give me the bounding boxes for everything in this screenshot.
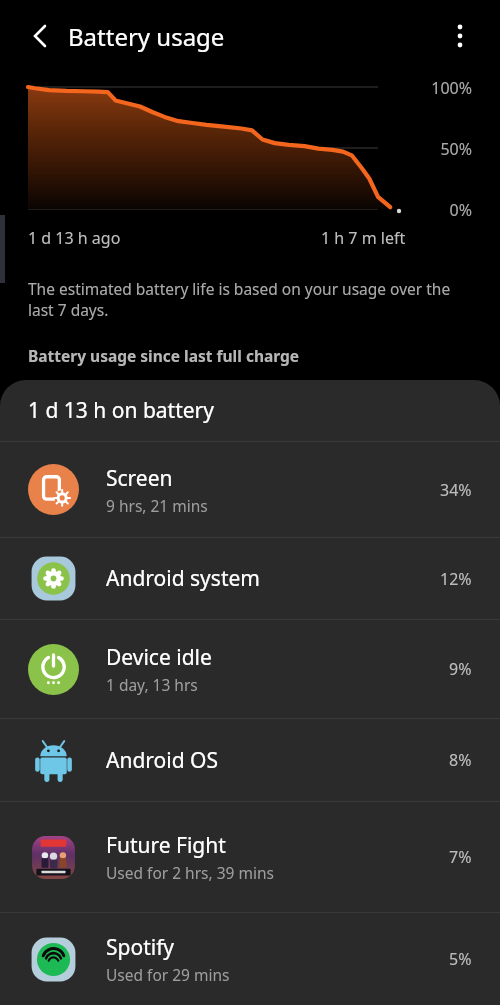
button[interactable]: Device idle [0, 619, 500, 718]
button[interactable]: Screen [0, 441, 500, 537]
staticText: Future Fight [106, 831, 226, 860]
staticText: Battery usage [68, 20, 225, 53]
staticText: 9 hrs, 21 mins [106, 495, 208, 516]
staticText: 34% [440, 479, 472, 501]
staticText: Android system [106, 564, 260, 593]
button[interactable]: Spotify [0, 912, 500, 1005]
staticText: Used for 29 mins [106, 964, 230, 985]
staticText: 9% [449, 658, 472, 680]
staticText: Battery usage since last full charge [28, 345, 300, 366]
staticText: Used for 2 hrs, 39 mins [106, 862, 274, 883]
staticText: Android OS [106, 746, 218, 775]
staticText: 1 d 13 h on battery [28, 396, 214, 425]
button[interactable]: Future Fight [0, 801, 500, 912]
staticText: Screen [106, 464, 173, 493]
staticText: 5% [449, 948, 472, 970]
staticText: Device idle [106, 643, 212, 672]
button[interactable]: Back [18, 14, 62, 58]
button[interactable]: Android OS [0, 718, 500, 801]
staticText: 50% [440, 138, 472, 160]
staticText: 7% [449, 846, 472, 868]
staticText: 1 d 13 h ago [28, 227, 121, 249]
staticText: The estimated battery life is based on y… [28, 278, 460, 321]
staticText: 1 day, 13 hrs [106, 674, 198, 695]
button[interactable]: More options [438, 14, 482, 58]
staticText: 12% [440, 568, 472, 590]
staticText: 1 h 7 m left [321, 227, 406, 249]
staticText: 100% [431, 77, 472, 99]
staticText: Spotify [106, 933, 175, 962]
staticText: 8% [449, 749, 472, 771]
staticText: 0% [449, 199, 472, 221]
button[interactable]: Android system [0, 537, 500, 619]
